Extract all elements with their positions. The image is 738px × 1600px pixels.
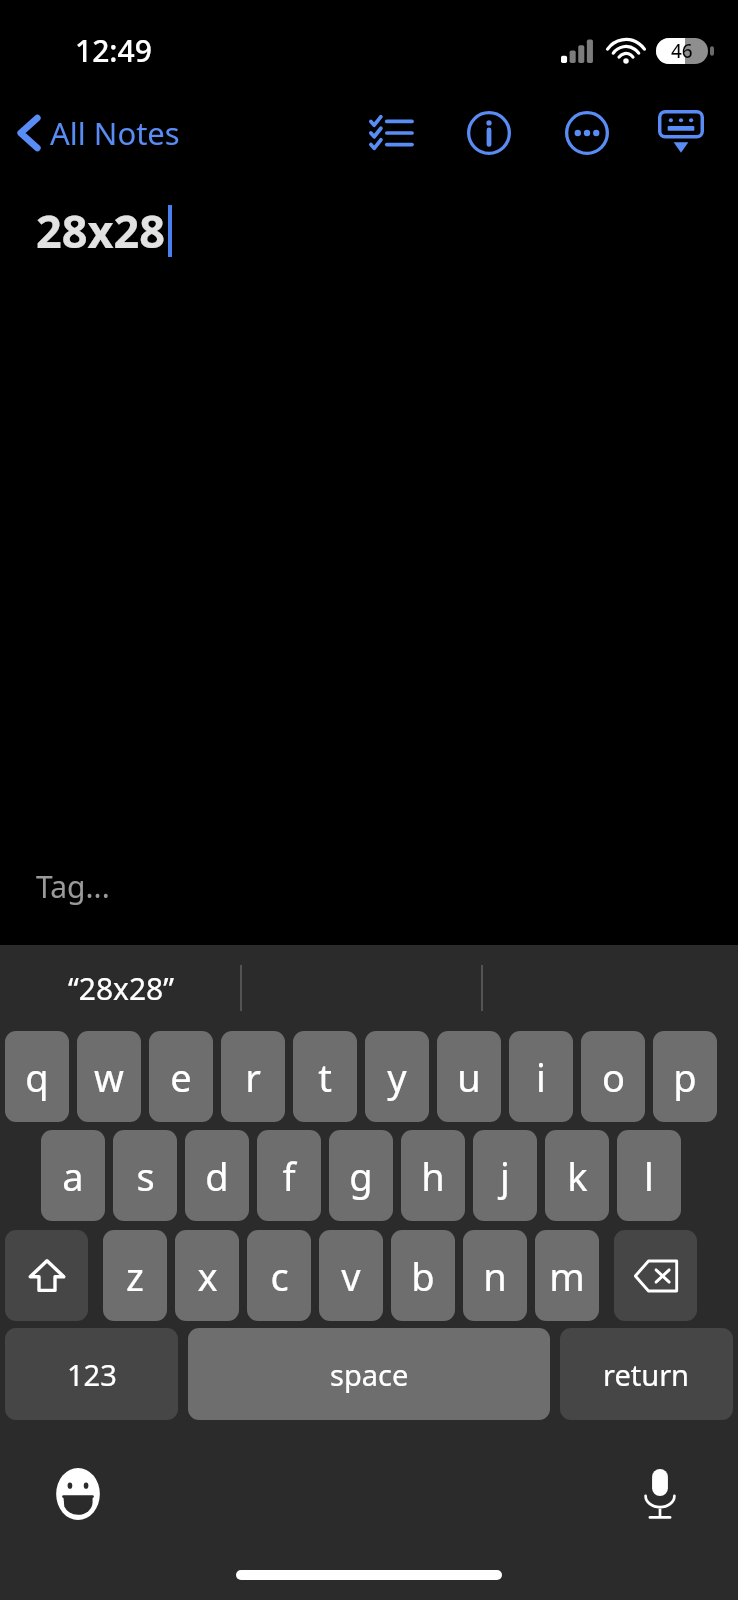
staticText: q <box>25 1051 49 1103</box>
staticText: All Notes <box>50 112 180 154</box>
staticText: e <box>170 1051 192 1103</box>
button[interactable]: Info <box>454 98 524 168</box>
button[interactable]: z <box>103 1230 167 1321</box>
button[interactable]: l <box>617 1130 681 1221</box>
staticText: x <box>197 1250 218 1302</box>
button[interactable]: k <box>545 1130 609 1221</box>
staticText: y <box>387 1051 407 1103</box>
button[interactable]: b <box>391 1230 455 1321</box>
staticText: u <box>457 1051 481 1103</box>
staticText: v <box>341 1250 361 1302</box>
button[interactable]: u <box>437 1031 501 1122</box>
staticText: n <box>483 1250 507 1302</box>
button[interactable]: Dictation <box>628 1462 692 1526</box>
button[interactable]: space <box>188 1328 550 1420</box>
staticText: k <box>567 1150 588 1202</box>
button[interactable]: Shift <box>5 1230 88 1321</box>
button[interactable]: m <box>535 1230 599 1321</box>
staticText: h <box>421 1150 445 1202</box>
staticText: 12:49 <box>75 30 152 71</box>
staticText: l <box>644 1150 654 1202</box>
staticText: d <box>205 1150 229 1202</box>
staticText: g <box>349 1150 373 1202</box>
button[interactable]: More <box>552 98 622 168</box>
button[interactable]: Emoji <box>46 1462 110 1526</box>
staticText: w <box>94 1051 124 1103</box>
button[interactable]: s <box>113 1130 177 1221</box>
button[interactable]: Backspace <box>614 1230 697 1321</box>
button[interactable]: c <box>247 1230 311 1321</box>
staticText: r <box>245 1051 261 1103</box>
staticText: b <box>411 1250 435 1302</box>
button[interactable]: i <box>509 1031 573 1122</box>
button[interactable]: o <box>581 1031 645 1122</box>
staticText: o <box>602 1051 625 1103</box>
button[interactable]: q <box>5 1031 69 1122</box>
button[interactable]: n <box>463 1230 527 1321</box>
button[interactable]: return <box>560 1328 733 1420</box>
staticText: space <box>330 1355 409 1394</box>
staticText: s <box>136 1150 155 1202</box>
button[interactable]: t <box>293 1031 357 1122</box>
button[interactable]: Tag... <box>0 866 110 945</box>
staticText: t <box>318 1051 332 1103</box>
button[interactable]: j <box>473 1130 537 1221</box>
button[interactable]: g <box>329 1130 393 1221</box>
staticText: i <box>536 1051 546 1103</box>
button[interactable]: Checklist <box>356 98 426 168</box>
staticText: j <box>500 1150 510 1202</box>
staticText: f <box>282 1150 296 1202</box>
button[interactable]: “28x28” <box>68 968 175 1009</box>
button[interactable]: e <box>149 1031 213 1122</box>
staticText: m <box>549 1250 585 1302</box>
button[interactable]: y <box>365 1031 429 1122</box>
button[interactable]: f <box>257 1130 321 1221</box>
staticText: 28x28 <box>36 200 165 261</box>
staticText: a <box>62 1150 84 1202</box>
button[interactable]: x <box>175 1230 239 1321</box>
staticText: return <box>603 1355 690 1394</box>
button[interactable]: 123 <box>5 1328 178 1420</box>
staticText: z <box>126 1250 144 1302</box>
button[interactable]: a <box>41 1130 105 1221</box>
staticText: 46 <box>671 38 693 64</box>
staticText: c <box>270 1250 289 1302</box>
staticText: p <box>673 1051 697 1103</box>
staticText: 123 <box>67 1355 117 1394</box>
button[interactable]: p <box>653 1031 717 1122</box>
button[interactable]: h <box>401 1130 465 1221</box>
button[interactable]: Hide keyboard <box>646 98 716 168</box>
button[interactable]: All Notes <box>0 106 192 160</box>
button[interactable]: r <box>221 1031 285 1122</box>
button[interactable]: v <box>319 1230 383 1321</box>
button[interactable]: w <box>77 1031 141 1122</box>
button[interactable]: d <box>185 1130 249 1221</box>
